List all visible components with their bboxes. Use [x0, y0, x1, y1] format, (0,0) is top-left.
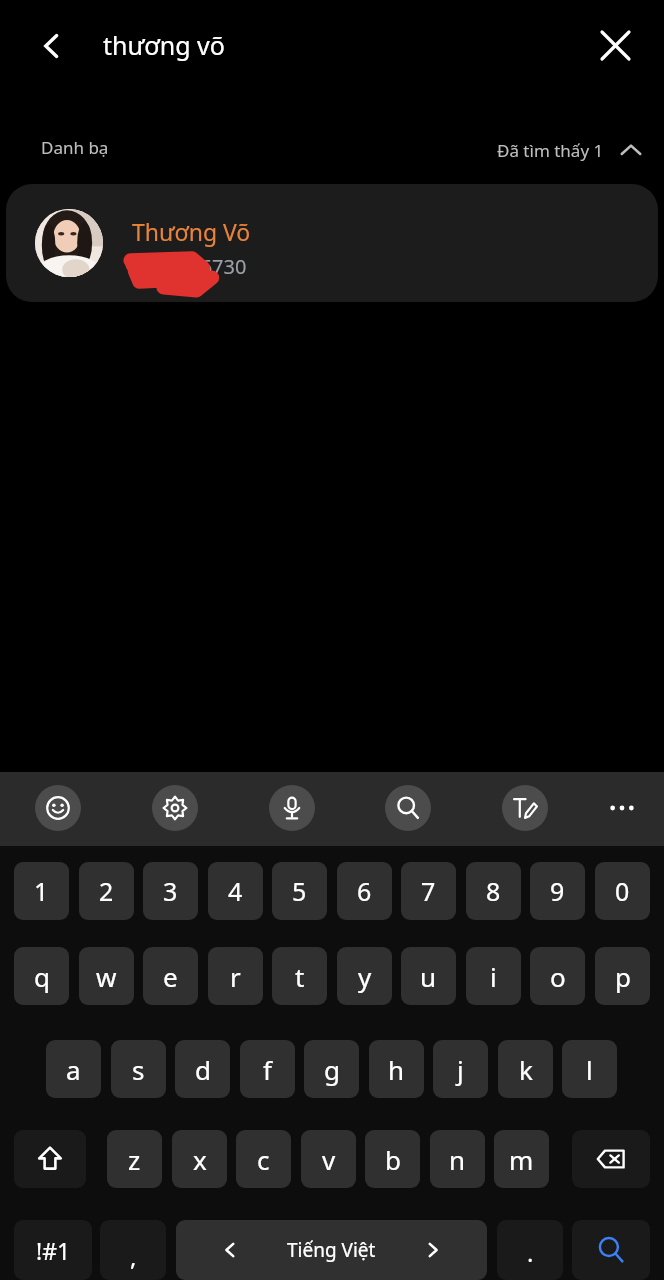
staticText: n [449, 1142, 466, 1177]
staticText: v [322, 1142, 336, 1177]
staticText: a [66, 1052, 81, 1087]
button[interactable]: 5 [272, 862, 327, 920]
button[interactable]: 8 [466, 862, 521, 920]
button[interactable]: w [79, 947, 134, 1005]
button[interactable]: Backspace [572, 1130, 650, 1188]
button[interactable]: s [111, 1040, 166, 1098]
button[interactable]: k [498, 1040, 553, 1098]
staticText: r [230, 959, 241, 994]
button[interactable]: 1 [14, 862, 69, 920]
staticText: Tiếng Việt [287, 1237, 376, 1263]
button[interactable]: n [430, 1130, 485, 1188]
staticText: e [163, 959, 178, 994]
button[interactable]: 7 [401, 862, 456, 920]
staticText: j [457, 1052, 464, 1087]
staticText: 7 [421, 874, 436, 908]
button[interactable]: Search [385, 785, 431, 831]
staticText: thương võ [103, 28, 225, 62]
button[interactable]: Clear search [589, 19, 641, 71]
staticText: q [34, 959, 50, 994]
button[interactable]: m [494, 1130, 549, 1188]
button[interactable]: Đã tìm thấy 1 [497, 137, 644, 163]
button[interactable]: Thương Võ [6, 184, 658, 302]
button[interactable]: x [172, 1130, 227, 1188]
staticText: !#1 [36, 1235, 71, 1266]
staticText: , [130, 1240, 137, 1273]
staticText: p [615, 959, 631, 994]
button[interactable]: c [236, 1130, 291, 1188]
button[interactable]: 2 [79, 862, 134, 920]
button[interactable]: v [301, 1130, 356, 1188]
button[interactable]: t [272, 947, 327, 1005]
staticText: 9 [550, 874, 565, 908]
staticText: u [420, 959, 437, 994]
staticText: z [128, 1142, 141, 1177]
button[interactable]: Voice input [269, 785, 315, 831]
staticText: Danh bạ [41, 136, 109, 159]
staticText: o [550, 959, 566, 994]
staticText: d [195, 1052, 211, 1087]
button[interactable]: Back [26, 20, 78, 72]
button[interactable]: Settings [152, 785, 198, 831]
staticText: l [586, 1052, 593, 1087]
staticText: . [527, 1236, 534, 1269]
staticText: m [509, 1142, 534, 1177]
staticText: Thương Võ [132, 216, 251, 247]
button[interactable]: 4 [208, 862, 263, 920]
button[interactable]: p [595, 947, 650, 1005]
staticText: 5 [292, 874, 307, 908]
button[interactable]: . [497, 1220, 563, 1280]
staticText: b [385, 1142, 401, 1177]
button[interactable]: , [100, 1220, 166, 1280]
staticText: 1 [34, 874, 49, 908]
staticText: 3 [163, 874, 178, 908]
button[interactable]: More options [599, 785, 645, 831]
other: Collapse [618, 137, 644, 163]
button[interactable]: 9 [530, 862, 585, 920]
button[interactable]: i [466, 947, 521, 1005]
button[interactable]: 3 [143, 862, 198, 920]
button[interactable]: 0 [595, 862, 650, 920]
button[interactable]: a [46, 1040, 101, 1098]
button[interactable]: j [433, 1040, 488, 1098]
button[interactable]: b [365, 1130, 420, 1188]
staticText: f [263, 1052, 272, 1087]
button[interactable]: u [401, 947, 456, 1005]
button[interactable]: y [337, 947, 392, 1005]
staticText: y [358, 959, 372, 994]
button[interactable]: !#1 [14, 1220, 92, 1280]
staticText: x [193, 1142, 207, 1177]
staticText: g [324, 1052, 340, 1087]
button[interactable]: o [530, 947, 585, 1005]
button[interactable]: Search [572, 1220, 650, 1280]
staticText: 2 [99, 874, 114, 908]
button[interactable]: q [14, 947, 69, 1005]
staticText: 0123456730 [132, 253, 247, 280]
staticText: 4 [228, 874, 243, 908]
button[interactable]: e [143, 947, 198, 1005]
staticText: 0 [615, 874, 630, 908]
button[interactable]: l [562, 1040, 617, 1098]
staticText: 6 [357, 874, 372, 908]
staticText: i [490, 959, 497, 994]
button[interactable]: d [175, 1040, 230, 1098]
button[interactable]: Tiếng Việt [176, 1220, 487, 1280]
button[interactable]: 6 [337, 862, 392, 920]
button[interactable]: g [304, 1040, 359, 1098]
staticText: Đã tìm thấy 1 [497, 139, 604, 162]
button[interactable]: Handwriting [502, 785, 548, 831]
staticText: k [519, 1052, 533, 1087]
button[interactable]: h [369, 1040, 424, 1098]
staticText: 8 [486, 874, 501, 908]
button[interactable]: Shift [14, 1130, 86, 1188]
button[interactable]: f [240, 1040, 295, 1098]
staticText: s [132, 1052, 145, 1087]
button[interactable]: z [107, 1130, 162, 1188]
staticText: c [257, 1142, 270, 1177]
staticText: w [96, 959, 117, 994]
staticText: h [388, 1052, 405, 1087]
button[interactable]: Emoji [35, 785, 81, 831]
staticText: t [295, 959, 305, 994]
button[interactable]: r [208, 947, 263, 1005]
